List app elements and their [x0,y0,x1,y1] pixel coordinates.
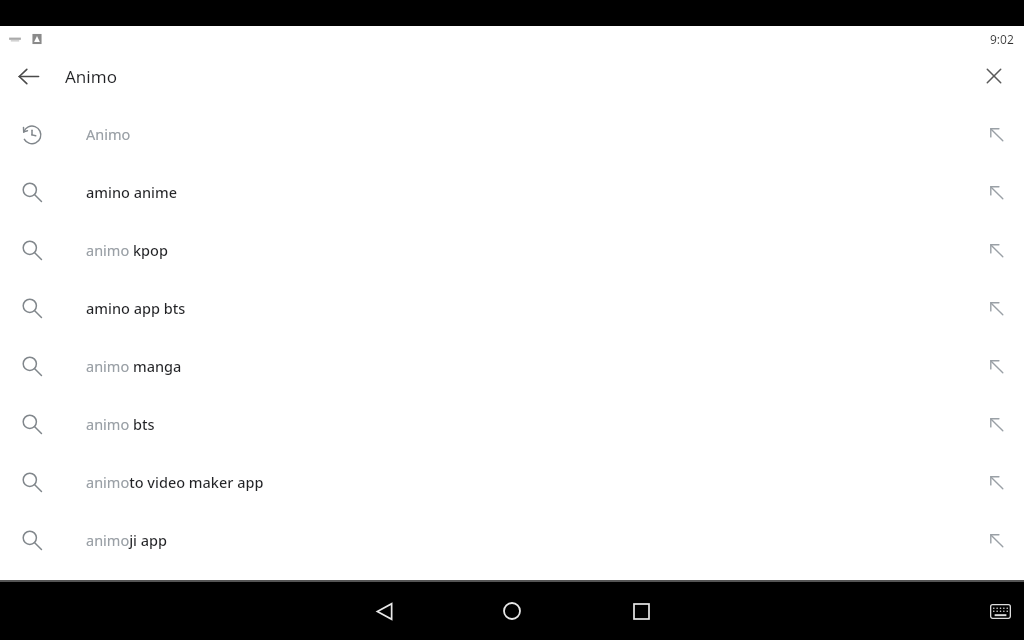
button[interactable]: Recent apps [617,587,665,635]
button[interactable]: animoji app [0,511,1024,569]
button[interactable]: animo manga [0,337,1024,395]
button[interactable]: animo kpop [0,221,1024,279]
button[interactable]: Insert suggestion [968,511,1024,569]
button[interactable]: amino anime [0,163,1024,221]
staticText: animo manga [86,356,968,376]
staticText: animo kpop [86,240,968,260]
button[interactable]: Insert suggestion [968,395,1024,453]
button[interactable]: animoto video maker app [0,453,1024,511]
staticText: amino app bts [86,298,968,318]
button[interactable]: amino app bts [0,279,1024,337]
button[interactable]: Insert suggestion [968,453,1024,511]
button[interactable]: Back [8,56,48,96]
button[interactable]: Insert suggestion [968,163,1024,221]
button[interactable]: Back [360,587,408,635]
button[interactable]: Insert suggestion [968,221,1024,279]
staticText: animoji app [86,530,968,550]
button[interactable]: Insert suggestion [968,105,1024,163]
staticText: animo bts [86,414,968,434]
button[interactable]: Home [488,587,536,635]
button[interactable]: Clear search [974,56,1014,96]
button[interactable]: Switch keyboard [980,591,1020,631]
button[interactable]: Insert suggestion [968,279,1024,337]
staticText: amino anime [86,182,968,202]
button[interactable]: Animo [0,105,1024,163]
staticText: animoto video maker app [86,472,968,492]
staticText: 9:02 [990,31,1014,47]
button[interactable]: Insert suggestion [968,337,1024,395]
button[interactable]: animo bts [0,395,1024,453]
staticText: Animo [86,124,968,144]
staticText: Animo [65,65,117,88]
